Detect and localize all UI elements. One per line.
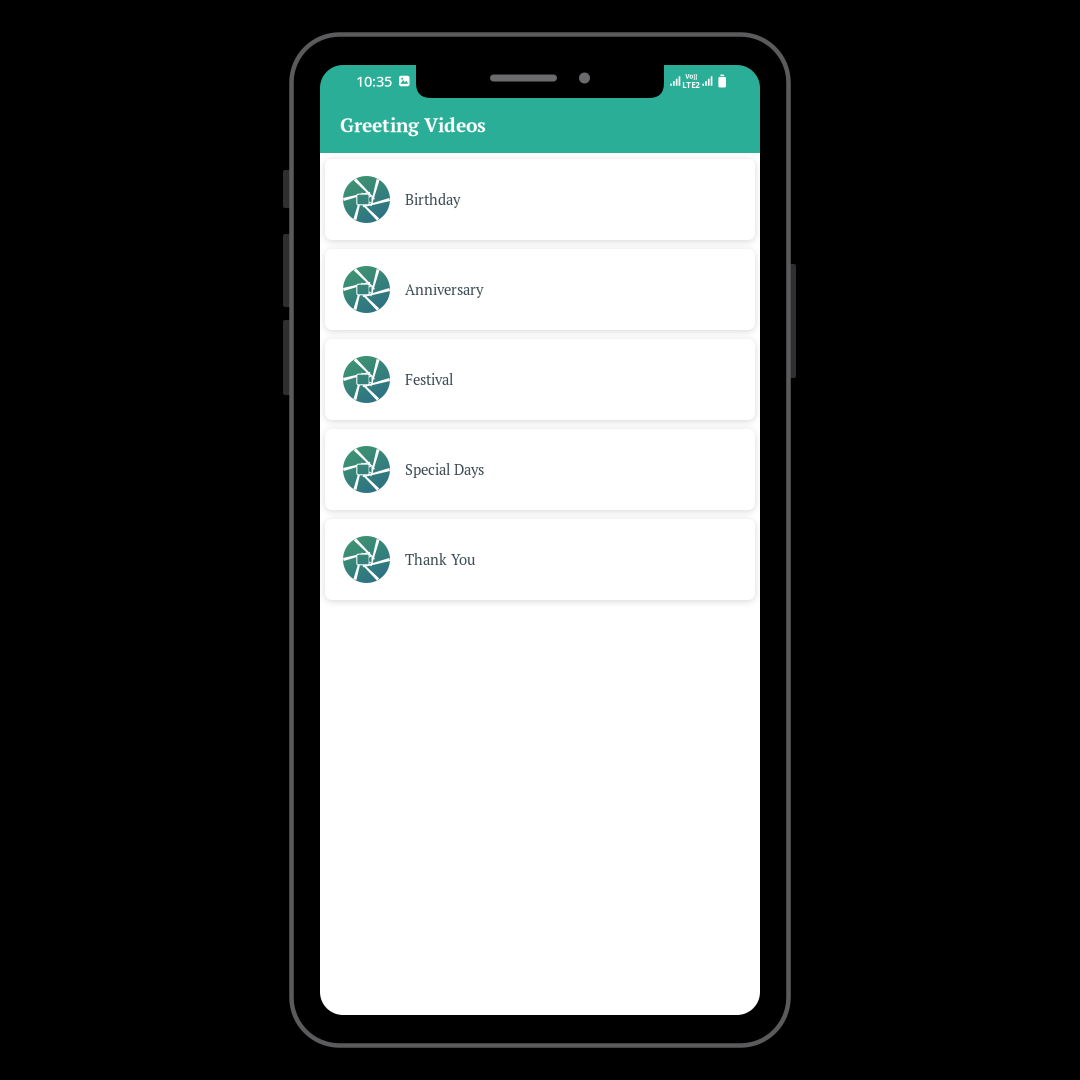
button[interactable]: Thank You bbox=[325, 519, 755, 600]
staticText: Special Days bbox=[405, 460, 484, 479]
staticText: Vo)) bbox=[685, 72, 697, 81]
button[interactable]: Special Days bbox=[325, 429, 755, 510]
staticText: 10:35 bbox=[356, 71, 392, 91]
staticText: Greeting Videos bbox=[340, 112, 486, 138]
staticText: LTE2 bbox=[682, 80, 700, 90]
staticText: Anniversary bbox=[405, 280, 483, 299]
button[interactable]: Festival bbox=[325, 339, 755, 420]
staticText: Festival bbox=[405, 370, 453, 389]
button[interactable]: Birthday bbox=[325, 159, 755, 240]
button[interactable]: Anniversary bbox=[325, 249, 755, 330]
staticText: Birthday bbox=[405, 190, 460, 209]
staticText: Thank You bbox=[405, 550, 475, 569]
